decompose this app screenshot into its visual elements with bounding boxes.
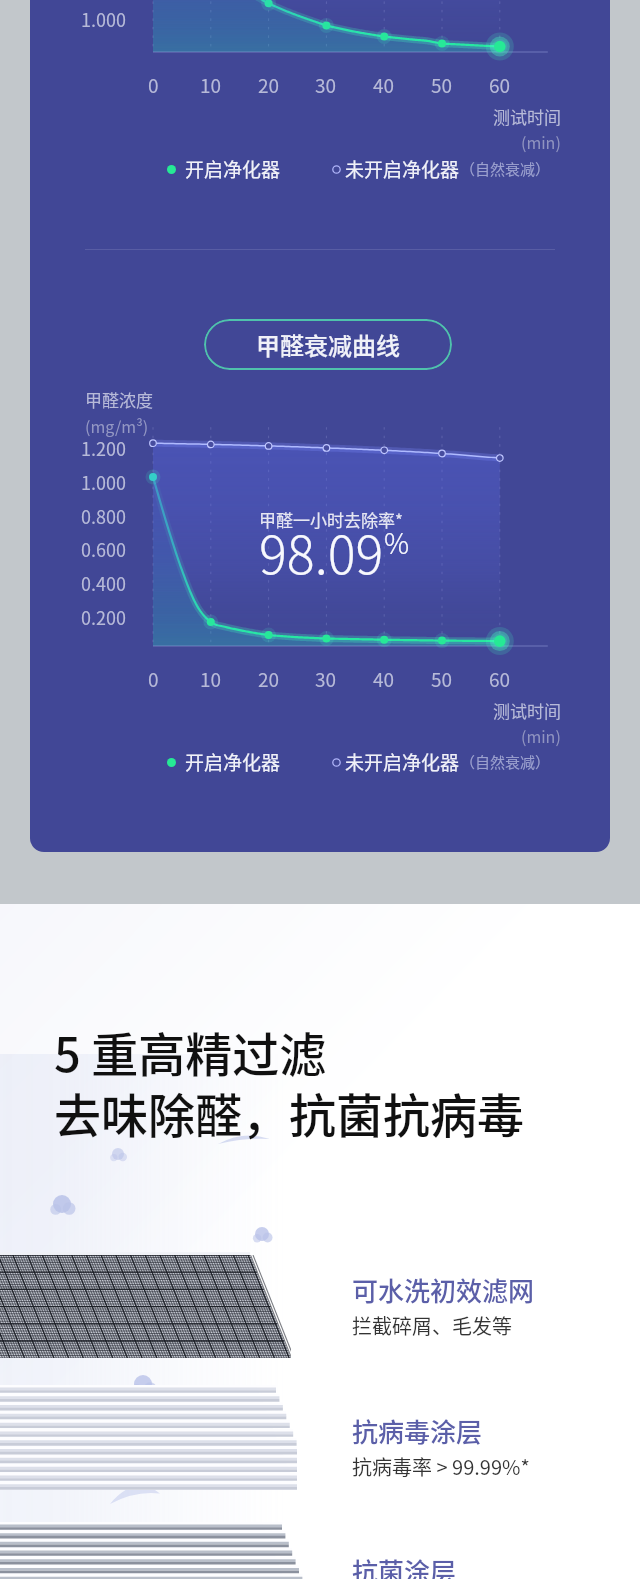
button[interactable]: 抗病毒涂层 — [352, 1412, 530, 1481]
button[interactable]: 未开启净化器 — [332, 748, 551, 776]
staticText: 1.200 — [81, 435, 126, 461]
staticText: 60 — [489, 71, 511, 99]
staticText: 30 — [315, 665, 337, 693]
button[interactable]: 开启净化器 — [167, 748, 281, 776]
staticText: 30 — [315, 71, 337, 99]
staticText: （自然衰减） — [460, 158, 551, 180]
staticText: 5 重高精过滤 — [54, 1017, 327, 1085]
button[interactable]: 抗菌涂层 — [352, 1552, 457, 1579]
button[interactable]: 可水洗初效滤网 — [352, 1271, 535, 1340]
button[interactable]: 未开启净化器 — [332, 155, 551, 183]
staticText: 0.600 — [81, 536, 126, 562]
staticText: 1.000 — [81, 469, 126, 495]
staticText: 40 — [373, 71, 395, 99]
staticText: 0.400 — [81, 570, 126, 596]
button[interactable]: 甲醛衰减曲线 — [204, 319, 452, 370]
staticText: 60 — [489, 665, 511, 693]
staticText: 20 — [258, 71, 280, 99]
staticText: 抗病毒涂层 — [352, 1412, 483, 1450]
staticText: 40 — [373, 665, 395, 693]
staticText: 10 — [200, 71, 222, 99]
staticText: 甲醛衰减曲线 — [256, 327, 400, 362]
button[interactable]: 开启净化器 — [167, 155, 281, 183]
staticText: 甲醛浓度 — [85, 387, 153, 412]
staticText: 0 — [148, 71, 159, 99]
staticText: 测试时间 — [493, 104, 561, 129]
staticText: 测试时间 — [493, 698, 561, 723]
staticText: 未开启净化器 — [345, 155, 460, 183]
staticText: (min) — [521, 130, 561, 153]
staticText: 98.09 — [259, 514, 384, 589]
staticText: (mg/m³) — [85, 414, 149, 437]
staticText: 50 — [431, 665, 453, 693]
staticText: 拦截碎屑、毛发等 — [352, 1311, 512, 1340]
staticText: 0 — [148, 665, 159, 693]
staticText: （自然衰减） — [460, 751, 551, 773]
staticText: 抗菌涂层 — [352, 1552, 457, 1579]
staticText: 50 — [431, 71, 453, 99]
staticText: 20 — [258, 665, 280, 693]
staticText: 开启净化器 — [185, 748, 281, 776]
staticText: % — [384, 522, 410, 563]
staticText: 抗病毒率 > 99.99%* — [352, 1452, 530, 1481]
staticText: 0.800 — [81, 503, 126, 529]
staticText: 0.200 — [81, 604, 126, 630]
staticText: (min) — [521, 724, 561, 747]
staticText: 可水洗初效滤网 — [352, 1271, 535, 1309]
staticText: 未开启净化器 — [345, 748, 460, 776]
staticText: 甲醛一小时去除率* — [259, 507, 403, 532]
staticText: 开启净化器 — [185, 155, 281, 183]
staticText: 1.000 — [81, 6, 126, 32]
staticText: 去味除醛，抗菌抗病毒 — [54, 1078, 524, 1146]
staticText: 10 — [200, 665, 222, 693]
